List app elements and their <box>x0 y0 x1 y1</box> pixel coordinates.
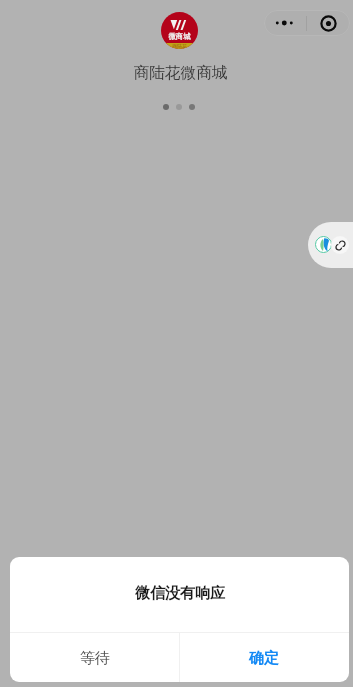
button[interactable]: 确定 <box>179 633 349 682</box>
button[interactable]: Floating window shortcut <box>308 222 353 268</box>
button[interactable]: More options <box>264 10 306 36</box>
staticText: 确定 <box>249 649 279 668</box>
staticText: 等待 <box>80 649 110 668</box>
button[interactable]: Close mini program <box>307 10 350 36</box>
staticText: 商陆花微商城 <box>133 63 228 83</box>
staticText: 商陆花 <box>172 43 187 49</box>
staticText: 微商城 <box>168 32 191 41</box>
button[interactable]: 等待 <box>10 633 179 682</box>
staticText: 微信没有响应 <box>135 584 225 603</box>
